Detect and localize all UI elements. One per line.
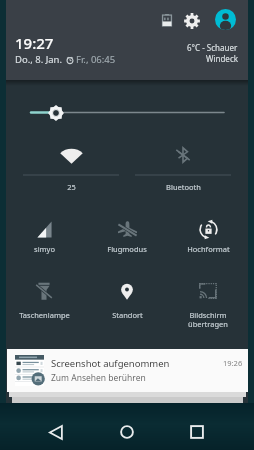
button[interactable]: Bluetooth <box>129 136 237 194</box>
staticText: Bluetooth <box>166 182 201 192</box>
button[interactable]: Back <box>38 414 74 450</box>
staticText: simyo <box>34 244 55 254</box>
staticText: Flugmodus <box>107 244 147 254</box>
button[interactable]: simyo <box>4 221 84 270</box>
staticText: 19:27 <box>15 33 54 53</box>
staticText: 6°C - Schauer <box>187 42 238 53</box>
button[interactable]: Taschenlampe <box>4 282 84 336</box>
button[interactable]: Settings <box>184 13 200 29</box>
button[interactable]: 25 <box>17 136 125 194</box>
staticText: Bildschirm übertragen <box>188 310 228 329</box>
button[interactable]: Home <box>109 414 145 450</box>
staticText: Zum Ansehen berühren <box>51 372 146 384</box>
button[interactable]: Flugmodus <box>87 221 167 270</box>
button[interactable]: Bildschirm übertragen <box>168 283 248 336</box>
staticText: Taschenlampe <box>19 310 70 320</box>
staticText: Standort <box>112 310 143 320</box>
button[interactable]: Hochformat <box>168 220 248 270</box>
staticText: Hochformat <box>187 244 230 254</box>
button[interactable]: Brightness <box>6 96 248 128</box>
staticText: Windeck <box>206 53 238 64</box>
staticText: Fr., 06:45 <box>76 53 116 66</box>
staticText: 25 <box>67 182 76 192</box>
button[interactable]: Recent apps <box>179 414 215 450</box>
staticText: Screenshot aufgenommen <box>51 357 170 370</box>
button[interactable]: User profile <box>215 9 236 30</box>
staticText: Do., 8. Jan. <box>15 53 63 66</box>
button[interactable]: Screenshot aufgenommen <box>7 349 248 392</box>
button[interactable]: SIM card <box>161 14 173 26</box>
staticText: 19:26 <box>223 358 243 368</box>
button[interactable]: Standort <box>87 282 167 336</box>
